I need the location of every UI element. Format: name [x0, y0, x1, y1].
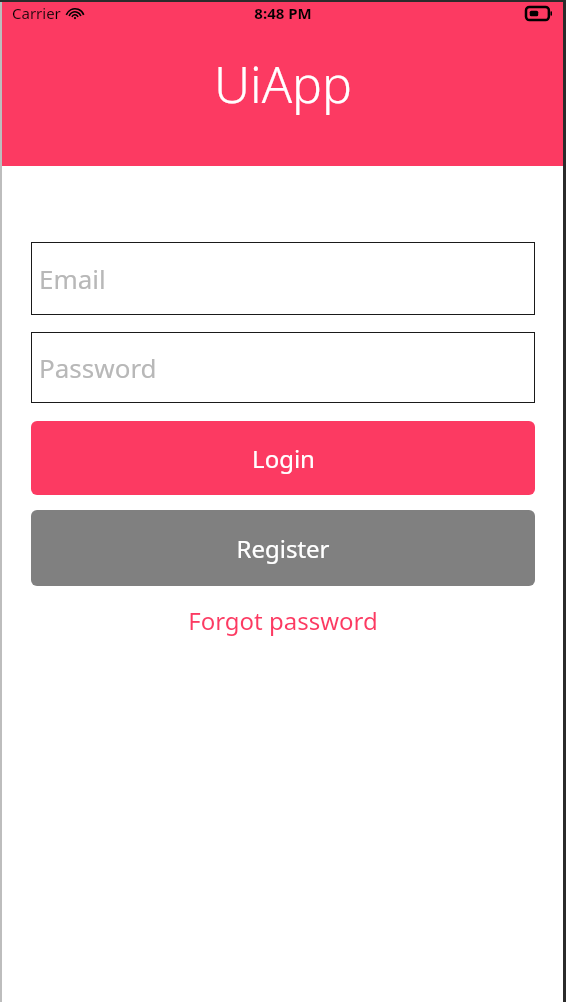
staticText: Forgot password	[188, 604, 378, 637]
button[interactable]: Login	[31, 421, 535, 495]
staticText: Register	[236, 532, 330, 565]
button[interactable]: Email	[31, 242, 535, 315]
staticText: UiApp	[0, 50, 566, 118]
staticText: Email	[39, 261, 106, 296]
button[interactable]: Register	[31, 510, 535, 586]
staticText: Password	[39, 350, 157, 385]
button[interactable]: Forgot password	[31, 600, 535, 641]
staticText: Carrier	[12, 3, 61, 23]
button[interactable]: Password	[31, 332, 535, 403]
staticText: Login	[252, 442, 315, 475]
staticText: 8:48 PM	[254, 3, 312, 23]
